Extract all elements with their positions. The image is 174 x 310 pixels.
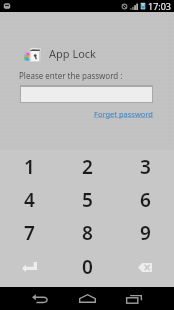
button[interactable]: Recents: [111, 287, 157, 310]
button[interactable]: 3: [116, 150, 174, 183]
button[interactable]: 1: [0, 150, 58, 183]
button[interactable]: 0: [58, 250, 116, 284]
button[interactable]: Back: [17, 287, 63, 310]
staticText: 7: [24, 220, 35, 246]
staticText: App Lock: [49, 46, 96, 61]
staticText: 3: [140, 154, 151, 180]
staticText: 4: [24, 187, 35, 213]
button[interactable]: Forget password: [94, 109, 153, 119]
button[interactable]: 6: [116, 183, 174, 216]
button[interactable]: Home: [64, 287, 110, 310]
staticText: 0: [82, 254, 93, 280]
staticText: 6: [140, 187, 151, 213]
button[interactable]: 5: [58, 183, 116, 216]
button[interactable]: 8: [58, 216, 116, 250]
button[interactable]: 9: [116, 216, 174, 250]
button[interactable]: 2: [58, 150, 116, 183]
staticText: 2: [82, 154, 93, 180]
staticText: 5: [82, 187, 93, 213]
staticText: 8: [82, 220, 93, 246]
staticText: 9: [140, 220, 151, 246]
staticText: 17:03: [148, 0, 172, 12]
button[interactable]: exit: [0, 250, 58, 284]
staticText: 1: [24, 154, 35, 180]
staticText: Please enter the password :: [19, 70, 123, 81]
button[interactable]: 7: [0, 216, 58, 250]
button[interactable]: backspace: [116, 250, 174, 284]
button[interactable]: 4: [0, 183, 58, 216]
